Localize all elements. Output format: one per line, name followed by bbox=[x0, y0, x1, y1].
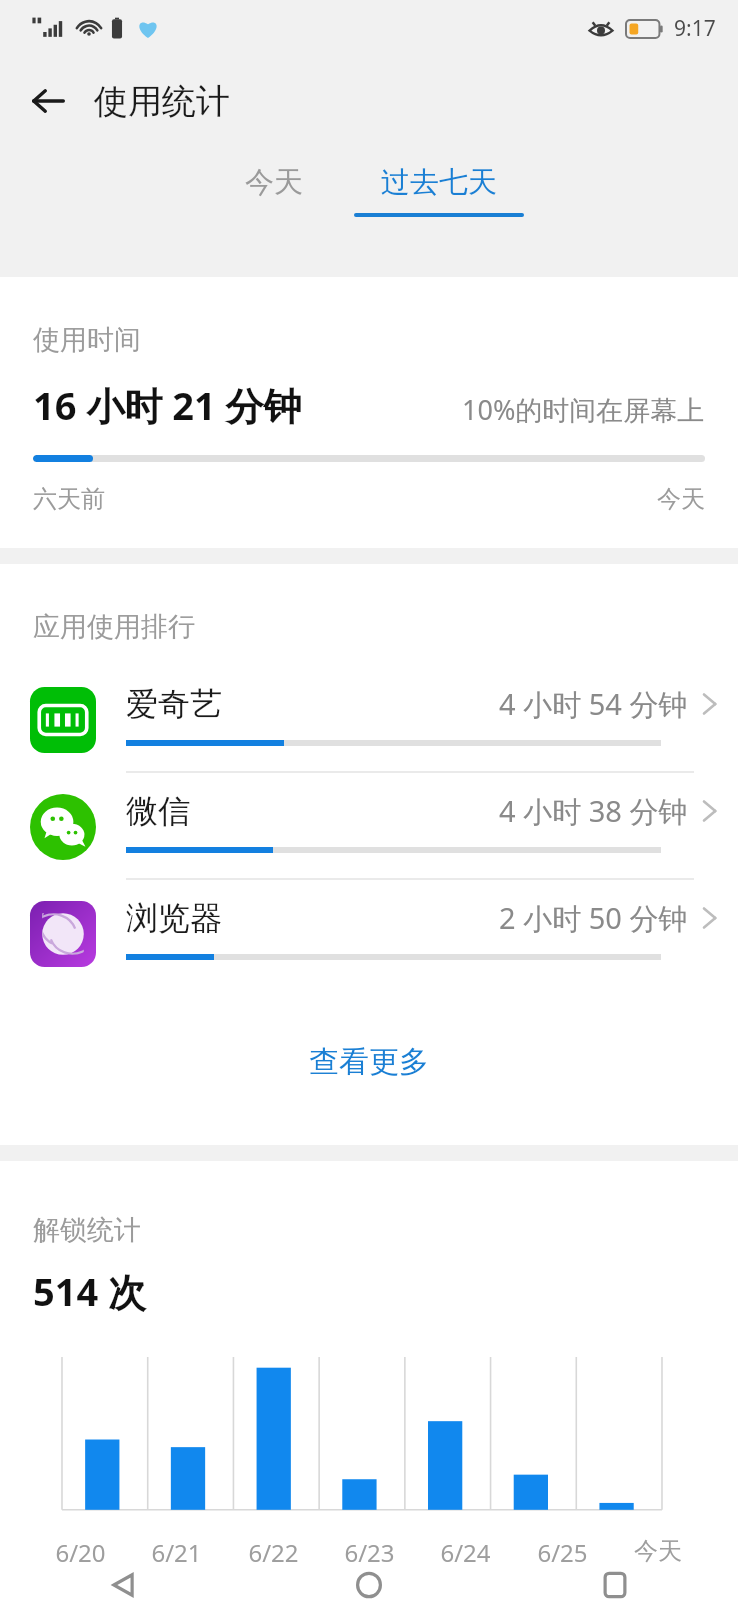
staticText: 过去七天 bbox=[381, 164, 497, 201]
staticText: 2 小时 50 分钟 bbox=[499, 898, 688, 938]
staticText: 使用时间 bbox=[33, 323, 141, 357]
staticText: 16 小时 21 分钟 bbox=[33, 379, 302, 431]
staticText: 4 小时 38 分钟 bbox=[499, 791, 688, 831]
staticText: 6/21 bbox=[151, 1536, 202, 1569]
staticText: 9:17 bbox=[674, 14, 716, 43]
button[interactable]: 今天 bbox=[204, 160, 344, 246]
staticText: 6/22 bbox=[248, 1536, 299, 1569]
staticText: 6/25 bbox=[537, 1536, 588, 1569]
staticText: 应用使用排行 bbox=[33, 610, 195, 644]
staticText: 今天 bbox=[634, 1536, 682, 1566]
staticText: 4 小时 54 分钟 bbox=[499, 684, 688, 724]
button[interactable]: Back bbox=[18, 71, 78, 131]
staticText: 6/24 bbox=[440, 1536, 491, 1569]
staticText: 浏览器 bbox=[126, 898, 222, 938]
staticText: 今天 bbox=[245, 164, 303, 201]
button[interactable]: Recent apps bbox=[492, 1570, 738, 1600]
staticText: 爱奇艺 bbox=[126, 684, 222, 724]
button[interactable]: Home bbox=[246, 1570, 492, 1600]
staticText: 六天前 bbox=[33, 484, 105, 514]
staticText: 6/23 bbox=[344, 1536, 395, 1569]
button[interactable]: 查看更多 bbox=[0, 1027, 738, 1097]
button[interactable]: 过去七天 bbox=[344, 160, 534, 246]
button[interactable]: 微信 bbox=[0, 773, 738, 880]
staticText: 514 次 bbox=[33, 1265, 147, 1317]
staticText: 微信 bbox=[126, 791, 190, 831]
staticText: 查看更多 bbox=[309, 1043, 429, 1081]
staticText: 6/20 bbox=[55, 1536, 106, 1569]
button[interactable]: Back bbox=[0, 1570, 246, 1600]
staticText: 今天 bbox=[657, 484, 705, 514]
staticText: 解锁统计 bbox=[33, 1213, 141, 1247]
button[interactable]: 爱奇艺 bbox=[0, 666, 738, 773]
staticText: 使用统计 bbox=[94, 80, 230, 123]
staticText: 10%的时间在屏幕上 bbox=[462, 391, 705, 428]
button[interactable]: 浏览器 bbox=[0, 880, 738, 987]
